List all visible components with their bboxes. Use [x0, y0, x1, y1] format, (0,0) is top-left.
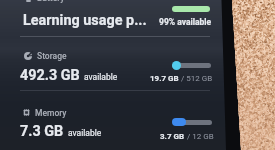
- staticText: Learning usage p...: [23, 12, 147, 29]
- staticText: / 512 GB: [179, 74, 213, 83]
- staticText: 99% available: [159, 17, 212, 27]
- button[interactable]: Battery: [25, 0, 65, 4]
- button[interactable]: Memory: [23, 107, 67, 118]
- staticText: 19.7 GB: [150, 74, 179, 83]
- staticText: Memory: [35, 108, 67, 118]
- staticText: Storage: [37, 51, 67, 61]
- staticText: 3.7 GB: [160, 132, 185, 141]
- staticText: 7.3 GB: [20, 123, 64, 140]
- staticText: 492.3 GB: [20, 67, 80, 84]
- staticText: available: [68, 128, 102, 138]
- staticText: Battery: [37, 0, 65, 3]
- button[interactable]: Storage: [24, 50, 67, 61]
- other: Battery charge: [172, 6, 210, 12]
- staticText: / 12 GB: [185, 132, 214, 141]
- button[interactable]: Learning usage p...: [23, 12, 147, 29]
- staticText: available: [84, 72, 118, 82]
